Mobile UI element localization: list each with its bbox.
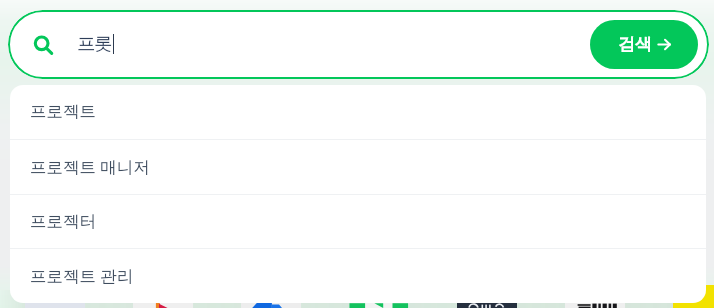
staticText: 프로젝트 관리: [30, 264, 134, 287]
button[interactable]: [133, 285, 193, 308]
staticText: 프로젝터: [30, 211, 96, 232]
staticText: 프로젝트: [30, 101, 96, 122]
staticText: 프롯: [77, 32, 112, 55]
button[interactable]: [241, 285, 301, 308]
other: Search: [33, 34, 55, 56]
button[interactable]: 프로젝트: [10, 85, 706, 140]
button[interactable]: 프로젝트 매니저: [10, 140, 706, 195]
button[interactable]: [25, 285, 85, 308]
button[interactable]: [349, 285, 409, 308]
button[interactable]: 검색: [590, 20, 698, 69]
button[interactable]: [565, 285, 625, 308]
button[interactable]: [457, 285, 517, 308]
button[interactable]: 프로젝트 관리: [10, 249, 706, 303]
staticText: 프로젝트 매니저: [30, 155, 150, 178]
staticText: 검색: [618, 34, 652, 55]
button[interactable]: 프로젝터: [10, 195, 706, 249]
button[interactable]: [673, 285, 714, 308]
button[interactable]: Search: [8, 10, 709, 79]
